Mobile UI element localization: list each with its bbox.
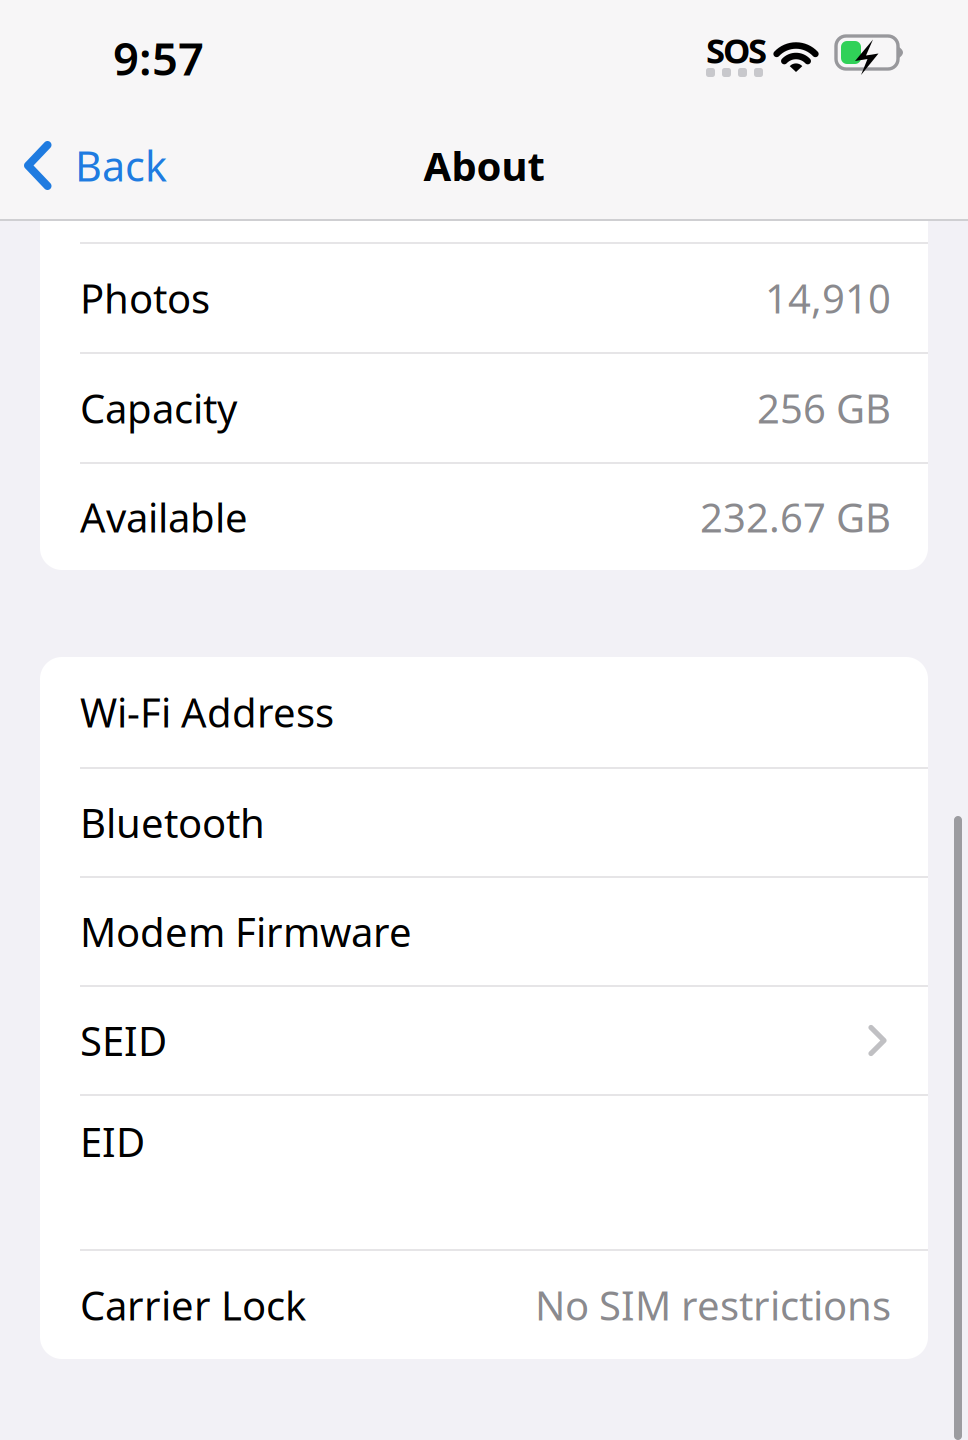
- staticText: Back: [75, 138, 167, 193]
- button[interactable]: Wi-Fi Address: [40, 657, 928, 767]
- button[interactable]: EID: [40, 1096, 928, 1249]
- staticText: 14,910: [765, 271, 891, 324]
- staticText: Carrier Lock: [80, 1278, 306, 1331]
- staticText: No SIM restrictions: [535, 1278, 891, 1331]
- staticText: EID: [80, 1115, 145, 1168]
- button[interactable]: Bluetooth: [40, 769, 928, 876]
- staticText: About: [423, 139, 544, 192]
- staticText: 256 GB: [757, 381, 891, 434]
- button[interactable]: Photos: [40, 244, 928, 352]
- staticText: Available: [80, 490, 248, 543]
- staticText: 232.67 GB: [700, 490, 891, 543]
- staticText: SEID: [80, 1014, 167, 1067]
- button[interactable]: Back: [0, 112, 187, 219]
- staticText: Bluetooth: [80, 796, 265, 849]
- staticText: Photos: [80, 271, 210, 324]
- button[interactable]: Available: [40, 464, 928, 570]
- button[interactable]: SEID: [40, 987, 928, 1094]
- staticText: Wi-Fi Address: [80, 685, 334, 738]
- button[interactable]: Modem Firmware: [40, 878, 928, 985]
- button[interactable]: Carrier Lock: [40, 1251, 928, 1359]
- staticText: 9:57: [113, 28, 204, 88]
- staticText: SOS: [706, 27, 767, 73]
- button[interactable]: Capacity: [40, 354, 928, 462]
- staticText: Capacity: [80, 381, 237, 434]
- staticText: Modem Firmware: [80, 905, 412, 958]
